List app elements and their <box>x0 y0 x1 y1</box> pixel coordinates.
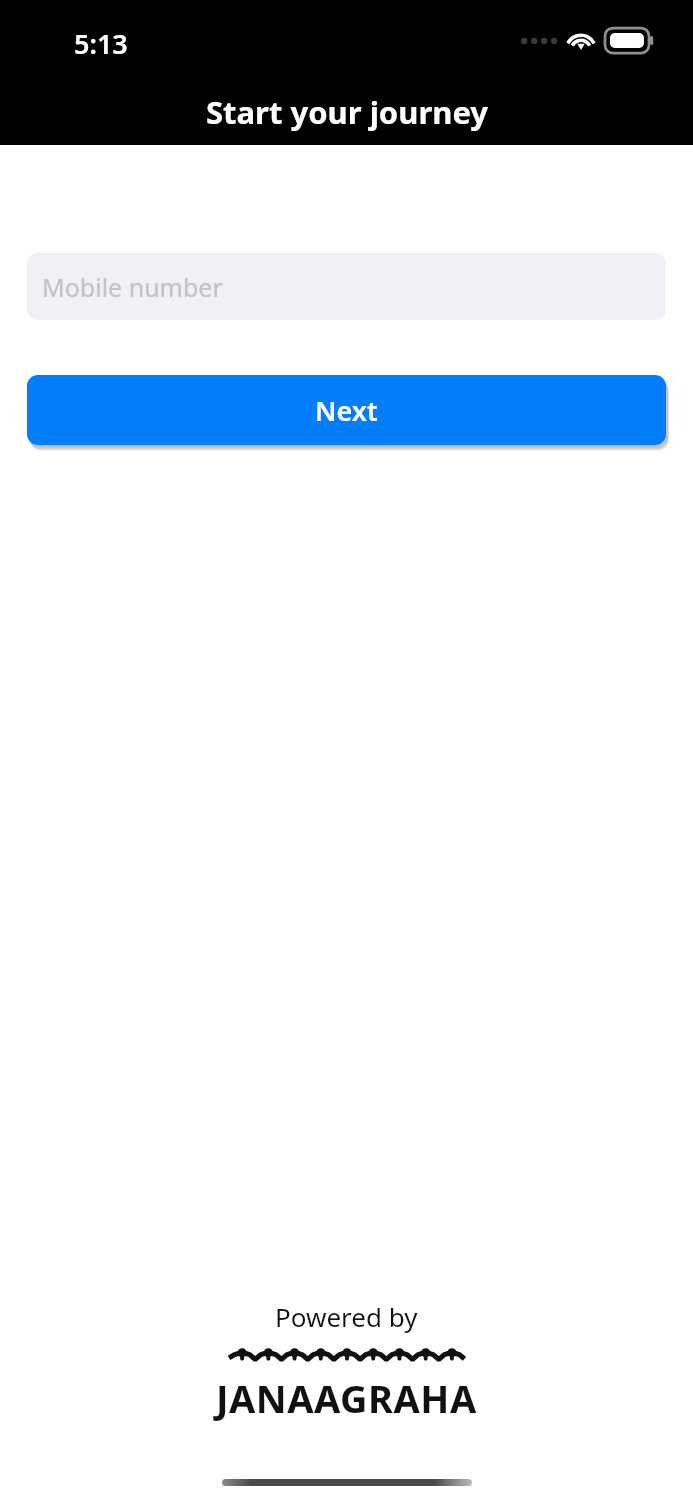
button[interactable]: Mobile number <box>27 253 666 320</box>
staticText: 5:13 <box>74 25 128 62</box>
staticText: Start your journey <box>206 91 488 133</box>
button[interactable]: Next <box>27 375 666 445</box>
staticText: Powered by <box>275 1299 418 1334</box>
staticText: Next <box>315 392 378 429</box>
staticText: JANAAGRAHA <box>216 1372 477 1424</box>
staticText: Mobile number <box>42 270 223 304</box>
